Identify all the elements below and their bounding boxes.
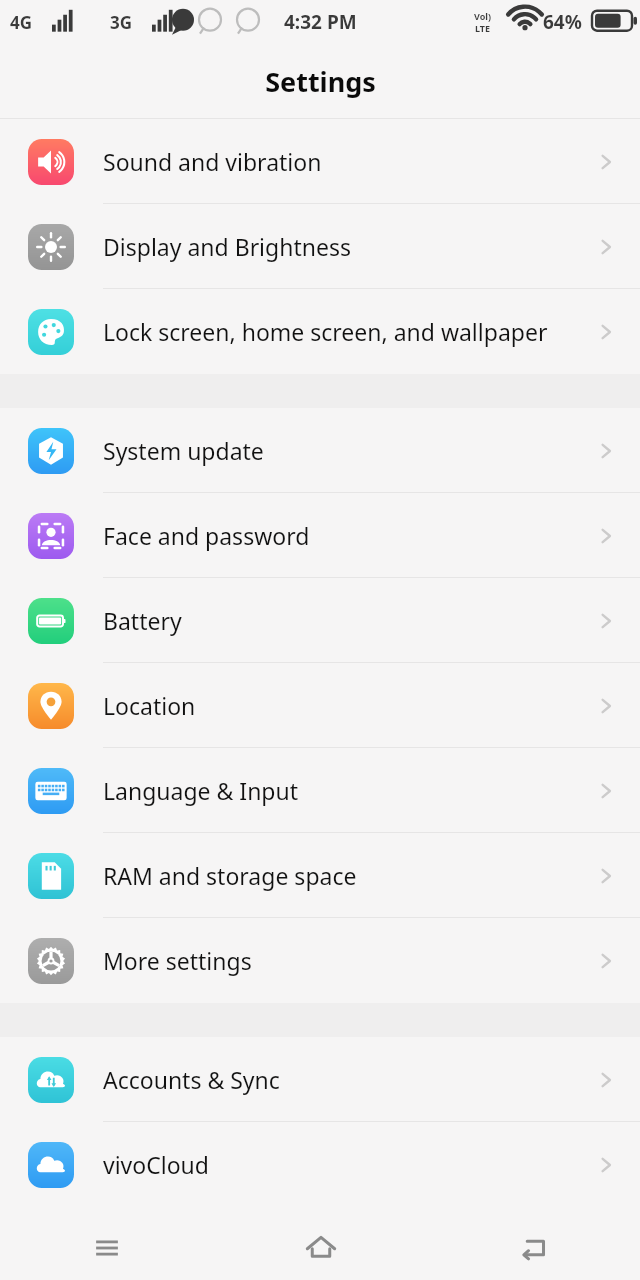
staticText: RAM and storage space bbox=[103, 860, 584, 891]
staticText: System update bbox=[103, 435, 584, 466]
staticText: Sound and vibration bbox=[103, 146, 584, 177]
button[interactable]: Battery bbox=[0, 578, 640, 663]
button[interactable]: More settings bbox=[0, 918, 640, 1003]
button[interactable]: Display and Brightness bbox=[0, 204, 640, 289]
staticText: Accounts & Sync bbox=[103, 1064, 584, 1095]
staticText: 4:32 PM bbox=[284, 9, 357, 35]
button[interactable]: Lock screen, home screen, and wallpaper bbox=[0, 289, 640, 374]
staticText: 64% bbox=[543, 9, 582, 35]
staticText: Vol) bbox=[474, 10, 492, 22]
staticText: Face and password bbox=[103, 520, 584, 551]
button[interactable]: Face and password bbox=[0, 493, 640, 578]
staticText: vivoCloud bbox=[103, 1149, 584, 1180]
staticText: Display and Brightness bbox=[103, 231, 584, 262]
button[interactable]: Recent apps bbox=[0, 1216, 214, 1280]
button[interactable]: Back bbox=[427, 1216, 640, 1280]
staticText: More settings bbox=[103, 945, 584, 976]
button[interactable]: Accounts & Sync bbox=[0, 1037, 640, 1122]
staticText: Settings bbox=[265, 63, 376, 100]
staticText: Battery bbox=[103, 605, 584, 636]
staticText: Language & Input bbox=[103, 775, 584, 806]
staticText: Location bbox=[103, 690, 584, 721]
button[interactable]: Sound and vibration bbox=[0, 119, 640, 204]
staticText: LTE bbox=[475, 22, 491, 34]
button[interactable]: vivoCloud bbox=[0, 1122, 640, 1207]
button[interactable]: Language & Input bbox=[0, 748, 640, 833]
staticText: Lock screen, home screen, and wallpaper bbox=[103, 316, 584, 347]
button[interactable]: Location bbox=[0, 663, 640, 748]
button[interactable]: RAM and storage space bbox=[0, 833, 640, 918]
button[interactable]: System update bbox=[0, 408, 640, 493]
staticText: 4G bbox=[10, 11, 33, 34]
staticText: 3G bbox=[110, 11, 133, 34]
button[interactable]: Home bbox=[214, 1216, 427, 1280]
